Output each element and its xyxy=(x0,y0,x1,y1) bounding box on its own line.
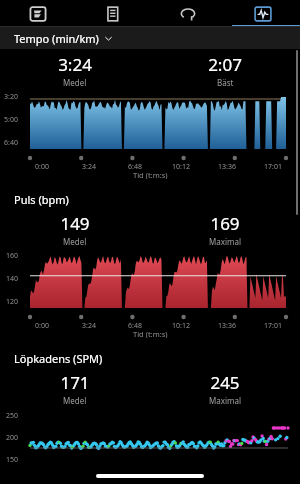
staticText: Medel xyxy=(63,77,87,88)
staticText: Tid (t:m:s) xyxy=(133,329,168,338)
staticText: 160 xyxy=(6,251,19,261)
staticText: 3:24 xyxy=(82,162,96,172)
staticText: 200 xyxy=(6,433,19,443)
button[interactable]: Laps xyxy=(0,0,75,27)
staticText: Puls (bpm) xyxy=(14,192,69,207)
staticText: Maximal xyxy=(209,236,242,247)
button[interactable]: Laps loop xyxy=(150,0,225,27)
staticText: 17:01 xyxy=(264,321,282,331)
staticText: 10:12 xyxy=(172,321,190,331)
staticText: 245 xyxy=(210,371,240,394)
staticText: 150 xyxy=(6,455,19,465)
staticText: 17:01 xyxy=(264,162,282,172)
staticText: Bäst xyxy=(217,77,234,88)
staticText: Medel xyxy=(63,236,87,247)
button[interactable]: Tempo (min/km) xyxy=(0,27,300,49)
staticText: 2:07 xyxy=(208,53,242,76)
button[interactable]: Details xyxy=(75,0,150,27)
staticText: 250 xyxy=(6,411,19,421)
staticText: 13:36 xyxy=(218,321,236,331)
staticText: 6:48 xyxy=(128,162,142,172)
staticText: 140 xyxy=(6,274,19,284)
staticText: 3:20 xyxy=(4,92,18,102)
staticText: Maximal xyxy=(209,395,242,406)
staticText: 6:40 xyxy=(4,138,18,148)
staticText: Medel xyxy=(63,395,87,406)
staticText: 149 xyxy=(60,212,90,235)
staticText: 171 xyxy=(60,371,90,394)
staticText: 10:12 xyxy=(172,162,190,172)
staticText: Löpkadens (SPM) xyxy=(14,351,103,366)
staticText: 0:00 xyxy=(35,321,49,331)
staticText: 6:48 xyxy=(128,321,142,331)
staticText: 3:24 xyxy=(82,321,96,331)
button[interactable]: Charts xyxy=(225,0,300,27)
staticText: Tid (t:m:s) xyxy=(133,170,168,179)
staticText: 0:00 xyxy=(35,162,49,172)
staticText: 3:24 xyxy=(58,53,92,76)
staticText: 13:36 xyxy=(218,162,236,172)
staticText: 169 xyxy=(210,212,240,235)
staticText: 120 xyxy=(6,297,19,307)
staticText: 5:00 xyxy=(4,115,18,125)
staticText: Tempo (min/km) xyxy=(14,31,99,46)
